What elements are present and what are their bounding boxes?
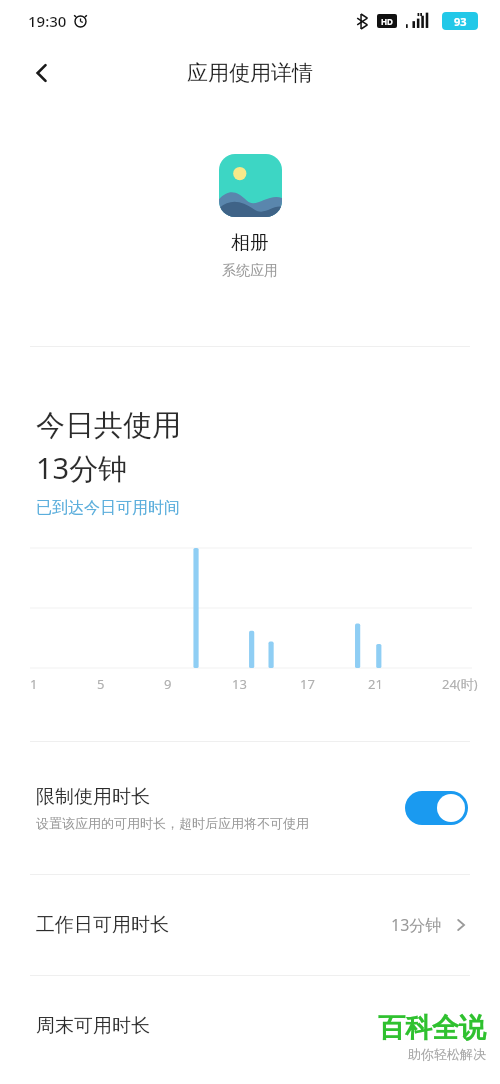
staticText: 应用使用详情 — [187, 60, 313, 86]
staticText: 5 — [97, 675, 105, 693]
staticText: 24(时) — [442, 675, 478, 693]
staticText: 设置该应用的可用时长，超时后应用将不可使用 — [36, 815, 309, 831]
button[interactable] — [219, 154, 282, 217]
staticText: 系统应用 — [222, 262, 278, 280]
staticText: 已到达今日可用时间 — [36, 498, 180, 518]
staticText: 9 — [164, 675, 172, 693]
staticText: 13 — [232, 675, 247, 693]
staticText: 今日共使用 — [36, 407, 181, 444]
staticText: 限制使用时长 — [36, 785, 150, 809]
staticText: 工作日可用时长 — [36, 913, 391, 937]
staticText: 百科全说 — [378, 1011, 486, 1045]
button[interactable]: 工作日可用时长 — [0, 875, 500, 975]
staticText: 93 — [454, 14, 467, 29]
staticText: 相册 — [231, 231, 269, 255]
button[interactable]: 限制使用时长 开关 — [405, 791, 468, 825]
button[interactable]: Back — [18, 49, 66, 97]
button[interactable]: 周末可用时长 — [0, 976, 500, 1076]
staticText: 周末可用时长 — [36, 1014, 468, 1038]
staticText: 17 — [300, 675, 315, 693]
staticText: 21 — [368, 675, 383, 693]
staticText: 19:30 — [28, 11, 67, 31]
staticText: 助你轻松解决 — [408, 1046, 486, 1062]
staticText: HD — [381, 16, 393, 27]
staticText: 13分钟 — [391, 914, 442, 936]
staticText: 13分钟 — [36, 448, 128, 488]
button[interactable]: 限制使用时长 — [0, 742, 500, 874]
staticText: 1 — [30, 675, 38, 693]
